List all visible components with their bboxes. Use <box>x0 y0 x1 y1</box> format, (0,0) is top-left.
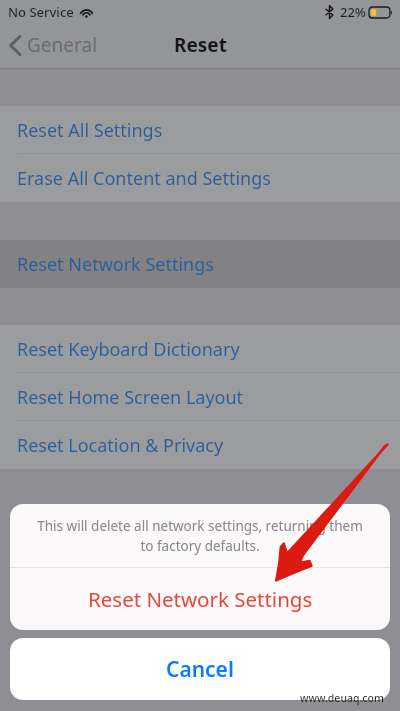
staticText: No Service <box>8 3 74 21</box>
staticText: www.deuaq.com <box>300 691 384 705</box>
button[interactable]: Back <box>9 32 98 58</box>
staticText: Reset All Settings <box>17 118 163 143</box>
button[interactable]: Reset All Settings <box>0 106 400 154</box>
button[interactable]: Reset Network Settings <box>0 240 400 288</box>
other: Back <box>9 35 22 56</box>
staticText: Erase All Content and Settings <box>17 166 271 191</box>
button[interactable]: Reset Network Settings <box>10 568 390 630</box>
staticText: Reset Network Settings <box>88 585 313 613</box>
button[interactable]: Reset Home Screen Layout <box>0 373 400 421</box>
button[interactable]: Reset Keyboard Dictionary <box>0 325 400 373</box>
staticText: Cancel <box>166 655 234 684</box>
staticText: This will delete all network settings, r… <box>37 517 363 555</box>
staticText: General <box>27 32 98 58</box>
staticText: Reset Network Settings <box>17 252 214 277</box>
staticText: Reset Home Screen Layout <box>17 385 244 410</box>
staticText: 22% <box>340 3 366 21</box>
button[interactable]: Erase All Content and Settings <box>0 154 400 202</box>
staticText: Reset Keyboard Dictionary <box>17 337 240 362</box>
button[interactable]: Reset Location & Privacy <box>0 421 400 469</box>
button[interactable]: Cancel <box>10 638 390 700</box>
staticText: Reset <box>174 32 227 58</box>
staticText: Reset Location & Privacy <box>17 433 224 458</box>
